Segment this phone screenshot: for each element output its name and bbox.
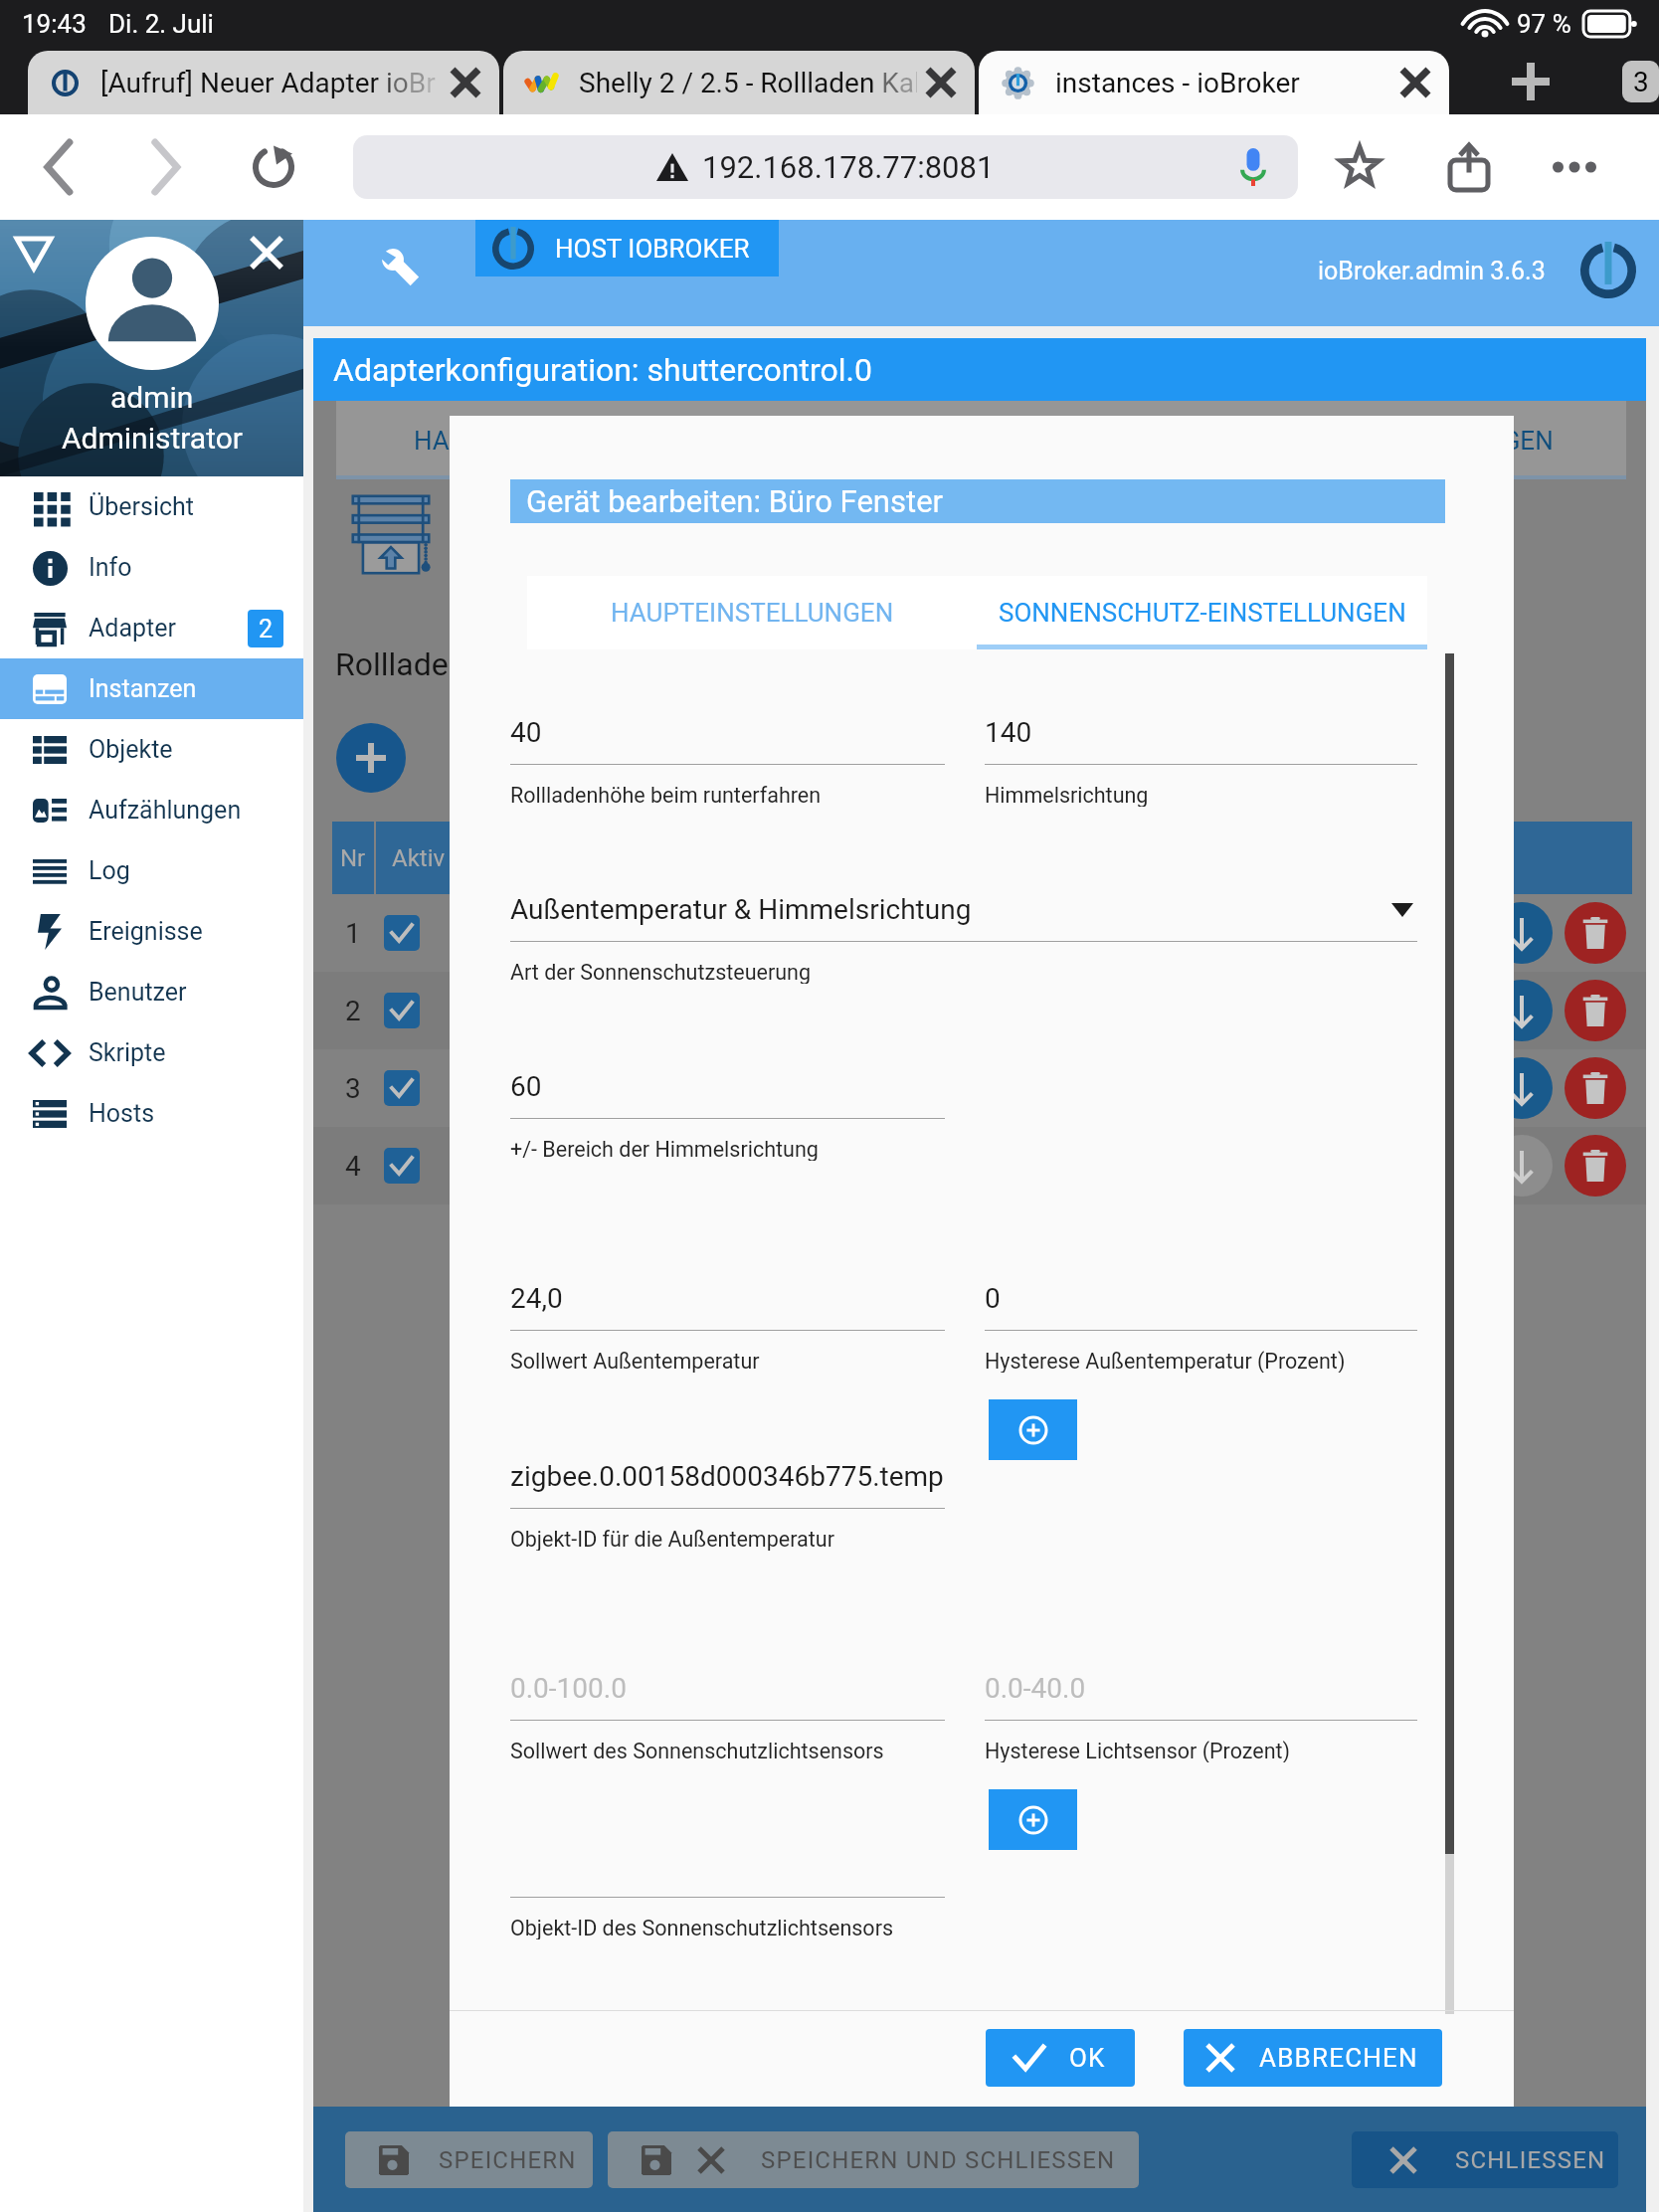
button[interactable]: Close tab — [442, 59, 489, 106]
button[interactable]: Share — [1433, 131, 1505, 203]
staticText: HAUPTEINSTELLUNGEN — [611, 598, 894, 628]
staticText: 40 — [510, 716, 542, 749]
staticText: SCHLIESSEN — [1455, 2146, 1606, 2174]
staticText: Aktiv — [392, 844, 446, 872]
staticText: 97 % — [1517, 9, 1571, 39]
button[interactable]: 2 — [313, 972, 1646, 1049]
button[interactable]: Log — [0, 840, 303, 901]
button[interactable]: Aufzählungen — [0, 780, 303, 840]
button[interactable]: Collapse — [8, 228, 60, 279]
button[interactable]: SPEICHERN UND SCHLIESSEN — [608, 2131, 1139, 2188]
staticText: Ereignisse — [89, 917, 203, 946]
button[interactable]: Instanzen — [0, 658, 303, 719]
staticText: Benutzer — [89, 978, 187, 1007]
button[interactable]: SONNENSCHUTZ-EINSTELLUNGEN — [977, 576, 1427, 649]
staticText: Rollladenhöhe beim runterfahren — [510, 783, 822, 807]
staticText: 2 — [259, 615, 274, 644]
button[interactable]: Forward — [129, 131, 201, 203]
button[interactable]: Back — [22, 131, 93, 203]
button[interactable]: 1 — [313, 894, 1646, 972]
staticText: 140 — [985, 716, 1032, 749]
button[interactable]: New tab — [1485, 48, 1576, 114]
button[interactable]: Reload — [238, 131, 309, 203]
button[interactable]: Delete — [1565, 902, 1626, 964]
staticText: Hysterese Außentemperatur (Prozent) — [985, 1349, 1346, 1373]
button[interactable]: HAUPTEINSTELLUNGEN — [527, 576, 977, 649]
button[interactable]: Add object — [989, 1399, 1077, 1460]
button[interactable]: Close tab — [917, 59, 965, 106]
staticText: Objekte — [89, 735, 173, 764]
staticText: +/- Bereich der Himmelsrichtung — [510, 1137, 819, 1161]
button[interactable]: Shelly 2 / 2.5 - Rollladen Kal — [503, 51, 975, 114]
button[interactable]: Ereignisse — [0, 901, 303, 962]
staticText: Shelly 2 / 2.5 - Rollladen Kal — [579, 67, 917, 99]
button[interactable]: Objekte — [0, 719, 303, 780]
staticText: Gerät bearbeiten: Büro Fenster — [526, 483, 944, 519]
button[interactable]: Übersicht — [0, 476, 303, 537]
staticText: SONNENSCHUTZ-EINSTELLUNGEN — [999, 598, 1406, 628]
button[interactable]: ABBRECHEN — [1184, 2029, 1442, 2087]
button[interactable]: Move down — [1491, 1135, 1553, 1197]
button[interactable]: SPEICHERN — [345, 2131, 593, 2188]
staticText: 0.0-40.0 — [985, 1672, 1086, 1705]
button[interactable]: Außentemperatur & Himmelsrichtung — [510, 893, 1417, 984]
button[interactable]: Hosts — [0, 1083, 303, 1144]
button[interactable]: Move down — [1491, 1057, 1553, 1119]
staticText: SONNENSCHUTZ-EINSTELLUNGEN — [1146, 426, 1554, 456]
button[interactable]: Info — [0, 537, 303, 598]
button[interactable]: [Aufruf] Neuer Adapter ioBr — [28, 51, 499, 114]
staticText: ABBRECHEN — [1259, 2043, 1418, 2073]
button[interactable]: 4 — [313, 1127, 1646, 1204]
staticText: HOST IOBROKER — [555, 234, 750, 264]
staticText: zigbee.0.00158d000346b775.temp — [510, 1460, 944, 1493]
button[interactable]: Show tabs — [1622, 48, 1659, 114]
button[interactable]: Adapter — [0, 598, 303, 658]
button[interactable]: Delete — [1565, 1135, 1626, 1197]
staticText: Adapter — [89, 614, 176, 643]
staticText: Rollladen — [335, 645, 466, 683]
button[interactable]: Add object — [989, 1789, 1077, 1850]
button[interactable]: OK — [986, 2029, 1135, 2087]
button[interactable]: Settings — [371, 238, 425, 291]
staticText: 19:43 — [22, 9, 87, 39]
staticText: HAUPTEINSTELLUNGEN — [414, 426, 697, 456]
button[interactable]: SCHLIESSEN — [1352, 2131, 1618, 2188]
staticText: Außentemperatur & Himmelsrichtung — [510, 893, 972, 926]
staticText: Instanzen — [89, 674, 197, 703]
button[interactable]: 3 — [313, 1049, 1646, 1127]
staticText: Log — [89, 856, 130, 885]
staticText: 3 — [1633, 66, 1649, 98]
staticText: 4 — [345, 1150, 361, 1183]
staticText: OK — [1069, 2043, 1106, 2073]
staticText: Administrator — [62, 421, 243, 456]
button[interactable]: Delete — [1565, 980, 1626, 1041]
staticText: admin — [110, 380, 194, 415]
button[interactable]: Close menu — [240, 226, 293, 279]
staticText: Di. 2. Juli — [108, 9, 214, 39]
staticText: Art der Sonnenschutzsteuerung — [510, 960, 812, 984]
staticText: 192.168.178.77:8081 — [702, 149, 995, 185]
button[interactable]: Close tab — [1391, 59, 1439, 106]
button[interactable]: More — [1539, 131, 1610, 203]
staticText: 24,0 — [510, 1282, 563, 1315]
staticText: Info — [89, 553, 132, 582]
button[interactable]: Delete — [1565, 1057, 1626, 1119]
button[interactable]: Bookmark — [1324, 131, 1395, 203]
staticText: SPEICHERN UND SCHLIESSEN — [761, 2146, 1116, 2174]
staticText: Aufzählungen — [89, 796, 242, 825]
button[interactable]: Benutzer — [0, 962, 303, 1022]
button[interactable]: Skripte — [0, 1022, 303, 1083]
staticText: 0 — [985, 1282, 1001, 1315]
staticText: Sollwert Außentemperatur — [510, 1349, 760, 1373]
button[interactable]: Move down — [1491, 902, 1553, 964]
staticText: SPEICHERN — [439, 2146, 577, 2174]
staticText: 60 — [510, 1070, 542, 1103]
button[interactable]: 192.168.178.77:8081 — [353, 135, 1298, 199]
button[interactable]: Move down — [1491, 980, 1553, 1041]
button[interactable]: Add device — [336, 723, 406, 793]
button[interactable]: HOST IOBROKER — [475, 220, 779, 276]
staticText: Sollwert des Sonnenschutzlichtsensors — [510, 1739, 884, 1762]
button[interactable]: instances - ioBroker — [979, 51, 1449, 114]
staticText: Objekt-ID für die Außentemperatur — [510, 1527, 834, 1551]
staticText: Hosts — [89, 1099, 155, 1128]
